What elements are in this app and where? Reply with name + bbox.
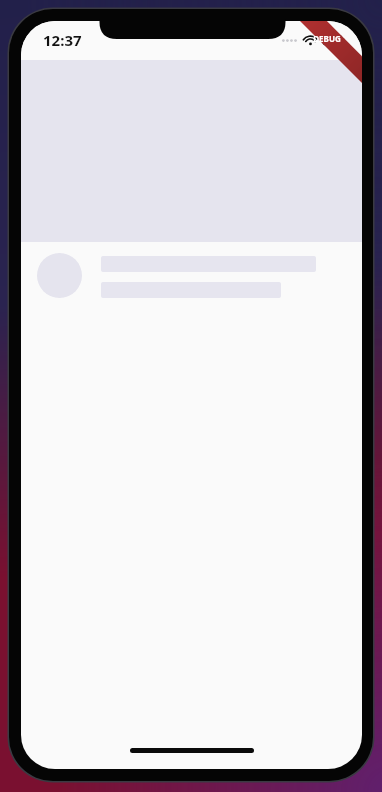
staticText: DEBUG [298,33,356,44]
button[interactable] [21,253,362,298]
staticText: 12:37 [43,30,82,50]
other: Debug banner [21,21,362,769]
button[interactable] [21,60,362,242]
